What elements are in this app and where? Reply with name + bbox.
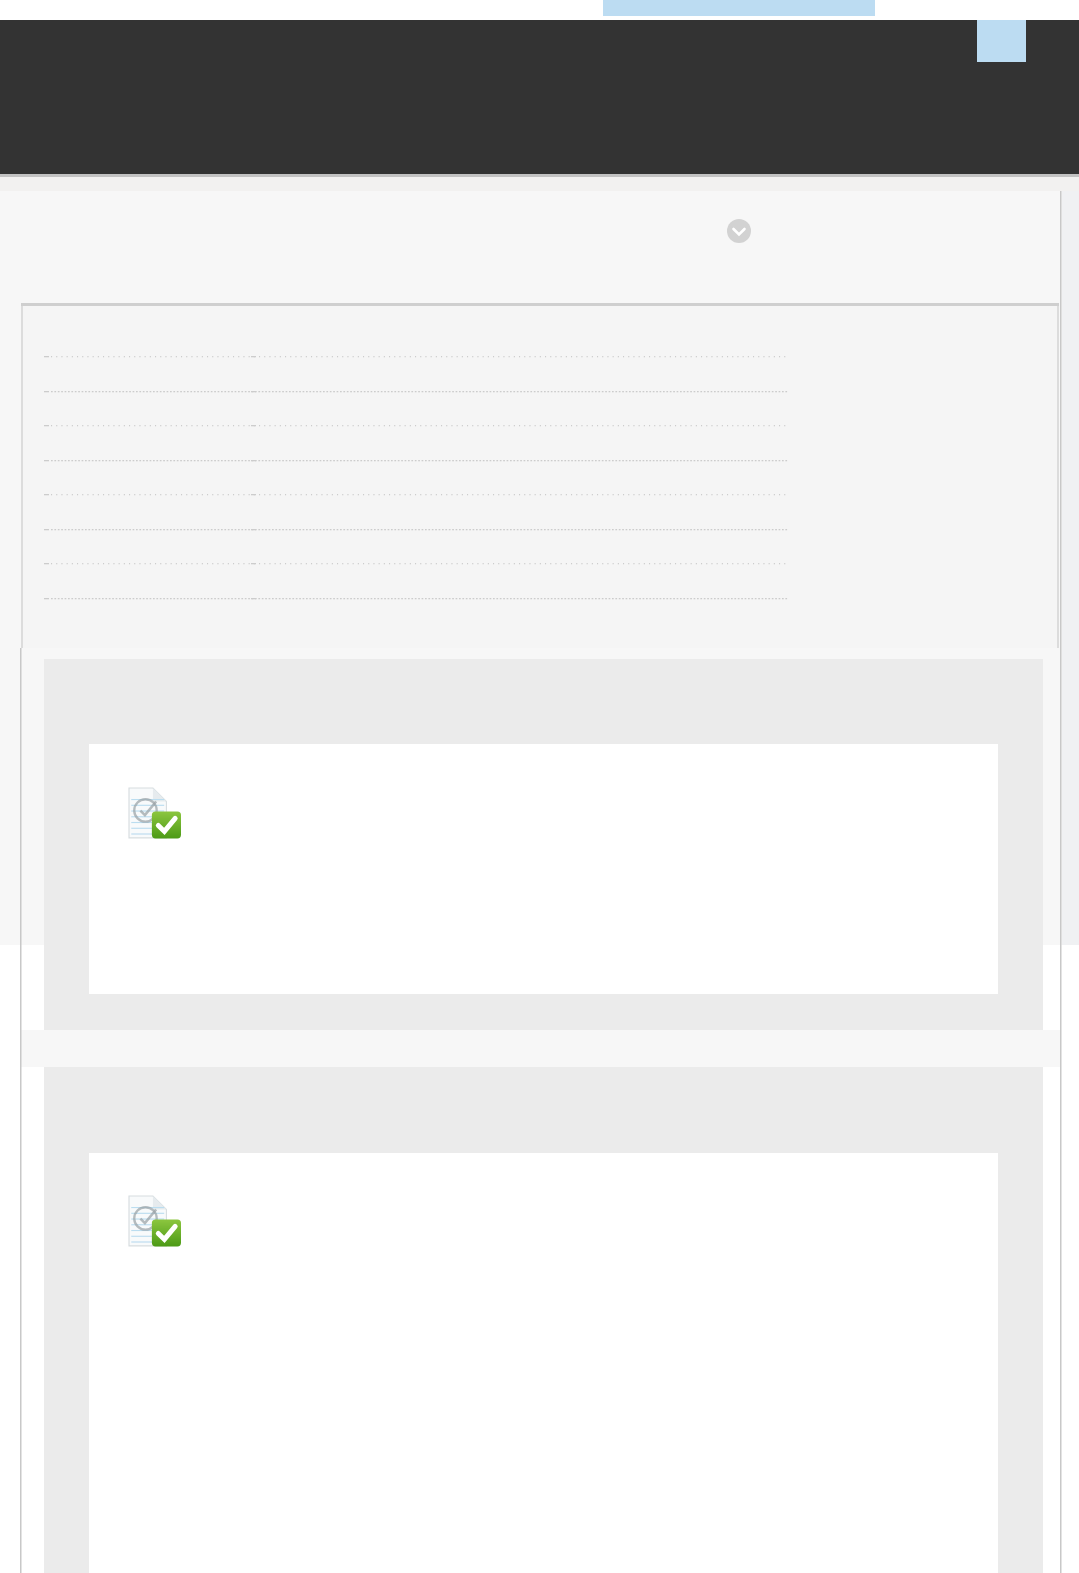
button[interactable]: Verified document card 1 bbox=[44, 659, 1043, 1030]
button[interactable]: Collapse section bbox=[727, 219, 751, 243]
button[interactable]: Verified document card 2 bbox=[44, 1067, 1043, 1573]
